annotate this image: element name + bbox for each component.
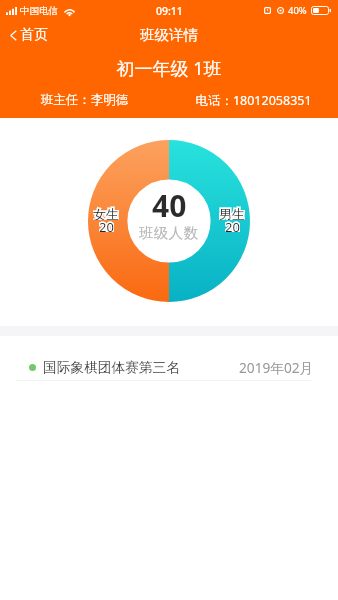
other: Back — [10, 30, 17, 41]
staticText: 20 — [225, 218, 240, 232]
staticText: 中国电信 — [20, 5, 58, 17]
staticText: 首页 — [20, 26, 48, 44]
staticText: 20 — [99, 218, 114, 232]
staticText: 40 — [152, 185, 187, 226]
button[interactable]: 电话：18012058351 — [169, 92, 338, 109]
staticText: 男生 — [219, 206, 245, 220]
staticText: 20 — [225, 218, 240, 232]
staticText: 电话：18012058351 — [169, 92, 338, 109]
staticText: 20 — [99, 218, 114, 232]
staticText: 09:11 — [156, 4, 183, 18]
staticText: 班主任：李明德 — [0, 92, 169, 108]
staticText: 女生 — [93, 206, 119, 220]
staticText: 初一年级 1班 — [0, 56, 338, 81]
staticText: 40% — [288, 4, 307, 17]
staticText: 班级详情 — [140, 26, 198, 44]
button[interactable]: 国际象棋团体赛第三名 — [0, 336, 338, 380]
staticText: 男生 — [219, 206, 245, 220]
staticText: 班级人数 — [139, 224, 199, 242]
staticText: 女生 — [93, 206, 119, 220]
button[interactable]: Back — [0, 22, 58, 48]
staticText: 2019年02月 — [239, 358, 314, 377]
staticText: 国际象棋团体赛第三名 — [43, 359, 180, 376]
